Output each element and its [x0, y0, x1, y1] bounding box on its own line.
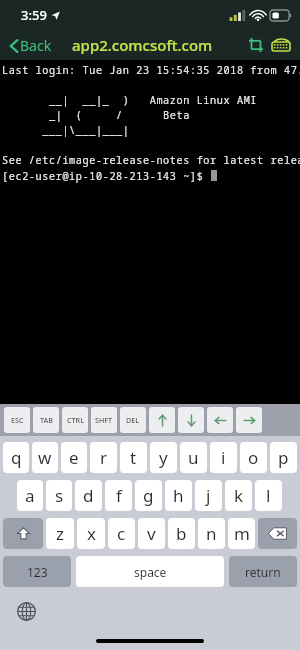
button[interactable]: q [3, 442, 29, 473]
staticText: _| ( / Beta [2, 108, 190, 122]
button[interactable]: i [210, 442, 237, 473]
staticText: c [117, 522, 126, 545]
staticText: j [206, 484, 211, 507]
staticText: s [55, 484, 64, 507]
button[interactable]: return [229, 556, 297, 587]
staticText: DEL [126, 415, 140, 425]
button[interactable]: Shift [3, 518, 43, 549]
button[interactable]: w [32, 442, 58, 473]
staticText: n [206, 522, 217, 545]
staticText: d [83, 484, 94, 507]
button[interactable]: u [180, 442, 207, 473]
button[interactable]: v [138, 518, 165, 549]
button[interactable]: o [240, 442, 267, 473]
staticText: 3:59 [21, 6, 47, 24]
button[interactable]: t [120, 442, 147, 473]
staticText: w [38, 446, 52, 469]
staticText: SHFT [95, 415, 113, 425]
button[interactable]: e [61, 442, 87, 473]
staticText: e [69, 446, 79, 469]
button[interactable]: Arrow Up [149, 407, 175, 433]
staticText: a [25, 484, 35, 507]
staticText: h [173, 484, 184, 507]
button[interactable]: f [105, 480, 132, 511]
staticText: p [278, 446, 289, 469]
staticText: return [245, 564, 281, 580]
staticText: t [130, 446, 137, 469]
staticText: space [134, 564, 167, 580]
staticText: g [143, 484, 154, 507]
button[interactable]: SHFT [91, 407, 117, 433]
staticText: [ec2-user@ip-10-28-213-143 ~]$ [2, 169, 211, 183]
button[interactable]: CTRL [62, 407, 88, 433]
button[interactable]: Arrow Down [178, 407, 204, 433]
staticText: ___|\___|___| [2, 123, 130, 137]
button[interactable]: space [76, 556, 224, 587]
button[interactable]: DEL [120, 407, 146, 433]
button[interactable]: n [198, 518, 225, 549]
staticText: u [188, 446, 199, 469]
staticText: __| __|_ ) Amazon Linux AMI [2, 93, 258, 107]
staticText: See /etc/image-release-notes for latest … [2, 153, 300, 167]
staticText: l [266, 484, 271, 507]
button[interactable]: z [46, 518, 74, 549]
button[interactable]: Backspace [258, 518, 297, 549]
button[interactable]: x [77, 518, 105, 549]
button[interactable]: l [255, 480, 282, 511]
button[interactable]: Back [0, 32, 58, 59]
staticText: TAB [40, 415, 53, 425]
button[interactable]: s [46, 480, 72, 511]
staticText: k [234, 484, 244, 507]
button[interactable]: Keyboard [268, 32, 294, 58]
staticText: x [87, 522, 96, 545]
button[interactable]: m [228, 518, 255, 549]
button[interactable]: Crop [244, 33, 268, 57]
button[interactable]: Arrow Right [236, 407, 262, 433]
button[interactable]: Arrow Left [207, 407, 233, 433]
button[interactable]: TAB [33, 407, 59, 433]
staticText: Last login: Tue Jan 23 15:54:35 2018 fro… [2, 63, 300, 77]
button[interactable]: g [135, 480, 162, 511]
button[interactable]: b [168, 518, 195, 549]
staticText: m [234, 522, 250, 545]
staticText: Back [20, 36, 52, 55]
button[interactable]: h [165, 480, 192, 511]
staticText: f [116, 484, 122, 507]
staticText: CTRL [67, 415, 84, 425]
staticText: o [248, 446, 259, 469]
button[interactable]: Change keyboard language [13, 598, 39, 624]
button[interactable]: d [75, 480, 102, 511]
button[interactable]: j [195, 480, 222, 511]
staticText: q [11, 446, 22, 469]
staticText: z [56, 522, 64, 545]
button[interactable]: p [270, 442, 297, 473]
staticText: ESC [11, 415, 24, 425]
staticText: r [100, 446, 108, 469]
staticText: i [221, 446, 226, 469]
button[interactable]: 123 [3, 556, 71, 587]
button[interactable]: y [150, 442, 177, 473]
staticText: y [159, 446, 168, 469]
button[interactable]: ESC [4, 407, 30, 433]
button[interactable]: r [90, 442, 117, 473]
button[interactable]: Last login: Tue Jan 23 15:54:35 2018 fro… [0, 60, 300, 404]
staticText: b [176, 522, 187, 545]
button[interactable]: a [17, 480, 43, 511]
staticText: v [147, 522, 156, 545]
staticText: app2.comcsoft.com [72, 35, 213, 55]
button[interactable]: k [225, 480, 252, 511]
button[interactable]: c [108, 518, 135, 549]
staticText: 123 [27, 564, 48, 580]
